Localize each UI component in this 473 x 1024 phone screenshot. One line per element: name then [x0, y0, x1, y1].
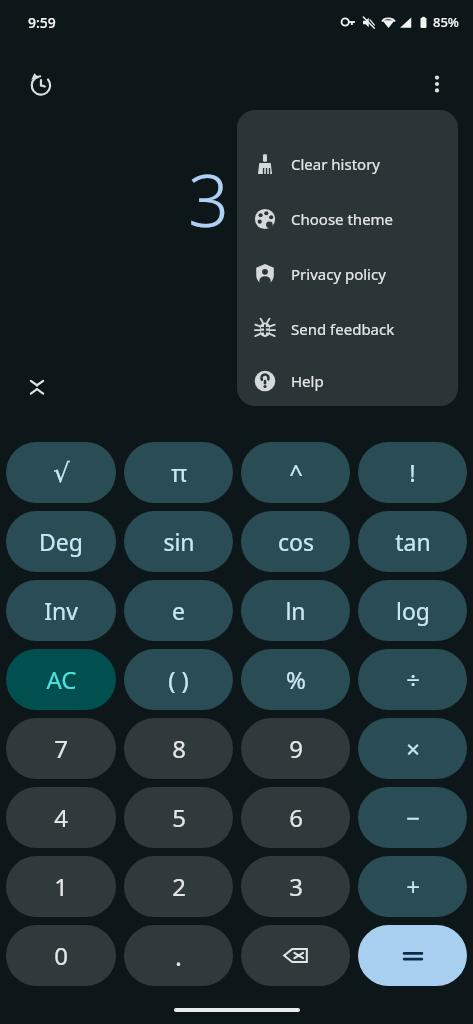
- button[interactable]: cos: [241, 511, 350, 572]
- button[interactable]: 9: [241, 718, 350, 779]
- button[interactable]: 6: [241, 787, 350, 848]
- staticText: 4: [54, 801, 68, 834]
- staticText: cos: [278, 526, 314, 557]
- staticText: Help: [291, 371, 324, 391]
- staticText: √: [53, 458, 70, 488]
- staticText: Choose theme: [291, 209, 394, 229]
- staticText: ^: [289, 456, 303, 489]
- staticText: 9: [289, 732, 303, 765]
- staticText: ×: [406, 732, 420, 765]
- staticText: Deg: [39, 526, 83, 557]
- staticText: ÷: [406, 663, 420, 696]
- staticText: 1: [54, 870, 68, 903]
- staticText: π: [171, 456, 187, 489]
- button[interactable]: Clear history: [237, 136, 458, 191]
- button[interactable]: ( ): [124, 649, 233, 710]
- staticText: AC: [46, 663, 77, 696]
- staticText: tan: [395, 526, 431, 557]
- staticText: 2: [172, 870, 186, 903]
- button[interactable]: 0: [6, 925, 116, 986]
- staticText: 3: [188, 150, 230, 248]
- button[interactable]: Expand pad: [16, 366, 58, 408]
- button[interactable]: 7: [6, 718, 116, 779]
- button[interactable]: ÷: [358, 649, 467, 710]
- staticText: Inv: [44, 595, 78, 626]
- button[interactable]: Backspace: [241, 925, 350, 986]
- staticText: Send feedback: [291, 319, 395, 339]
- staticText: Clear history: [291, 154, 380, 174]
- button[interactable]: +: [358, 856, 467, 917]
- staticText: 0: [54, 939, 68, 972]
- button[interactable]: 4: [6, 787, 116, 848]
- button[interactable]: Inv: [6, 580, 116, 641]
- staticText: +: [406, 870, 420, 903]
- staticText: e: [172, 595, 185, 626]
- button[interactable]: 2: [124, 856, 233, 917]
- button[interactable]: 8: [124, 718, 233, 779]
- button[interactable]: π: [124, 442, 233, 503]
- button[interactable]: ^: [241, 442, 350, 503]
- button[interactable]: 5: [124, 787, 233, 848]
- button[interactable]: 1: [6, 856, 116, 917]
- staticText: 6: [289, 801, 303, 834]
- button[interactable]: AC: [6, 649, 116, 710]
- button[interactable]: History: [16, 60, 64, 108]
- staticText: ( ): [168, 663, 189, 696]
- button[interactable]: Choose theme: [237, 191, 458, 246]
- staticText: .: [175, 938, 182, 973]
- button[interactable]: Help: [237, 356, 458, 406]
- staticText: ln: [285, 595, 306, 626]
- staticText: 5: [172, 801, 186, 834]
- button[interactable]: e: [124, 580, 233, 641]
- staticText: sin: [163, 526, 195, 557]
- button[interactable]: tan: [358, 511, 467, 572]
- button[interactable]: Send feedback: [237, 301, 458, 356]
- staticText: %: [286, 663, 306, 696]
- button[interactable]: 3: [241, 856, 350, 917]
- button[interactable]: [358, 925, 467, 986]
- staticText: 85%: [433, 13, 459, 31]
- button[interactable]: ×: [358, 718, 467, 779]
- button[interactable]: √: [6, 442, 116, 503]
- button[interactable]: ln: [241, 580, 350, 641]
- staticText: log: [396, 595, 430, 626]
- button[interactable]: log: [358, 580, 467, 641]
- button[interactable]: %: [241, 649, 350, 710]
- button[interactable]: More options: [413, 60, 461, 108]
- staticText: −: [406, 801, 420, 834]
- staticText: 7: [54, 732, 68, 765]
- staticText: 8: [172, 732, 186, 765]
- button[interactable]: .: [124, 925, 233, 986]
- button[interactable]: Deg: [6, 511, 116, 572]
- staticText: Privacy policy: [291, 264, 386, 284]
- button[interactable]: −: [358, 787, 467, 848]
- staticText: 3: [289, 870, 303, 903]
- staticText: 9:59: [28, 13, 56, 32]
- button[interactable]: Privacy policy: [237, 246, 458, 301]
- staticText: !: [409, 456, 416, 489]
- button[interactable]: sin: [124, 511, 233, 572]
- button[interactable]: !: [358, 442, 467, 503]
